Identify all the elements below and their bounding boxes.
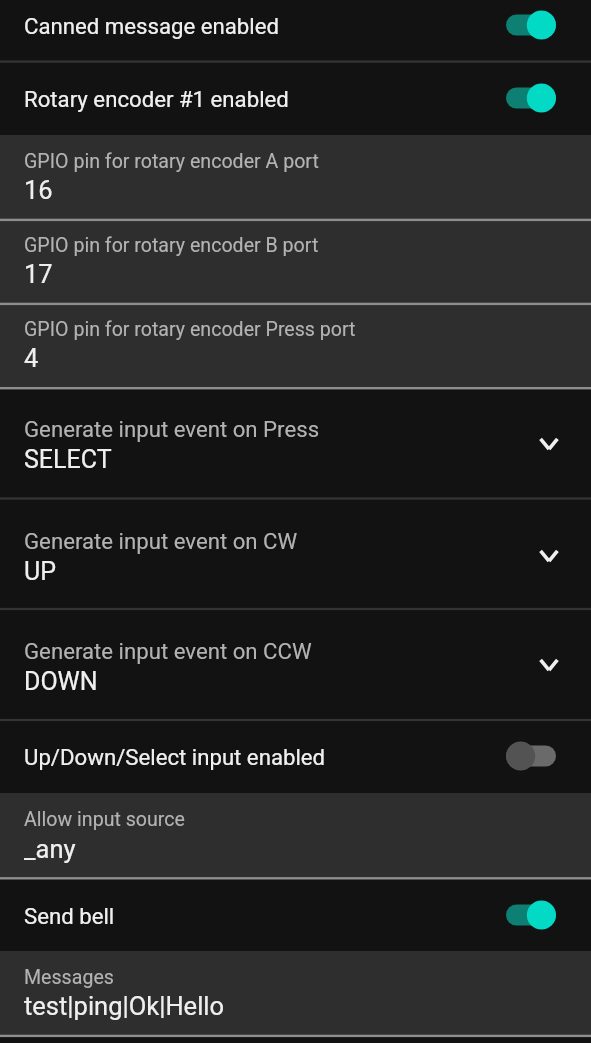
- staticText: 16: [24, 175, 53, 205]
- staticText: DOWN: [24, 667, 98, 696]
- button[interactable]: Up/Down/Select input enabled: [0, 720, 591, 793]
- staticText: GPIO pin for rotary encoder Press port: [24, 318, 356, 341]
- staticText: GPIO pin for rotary encoder B port: [24, 234, 319, 257]
- staticText: Generate input event on CCW: [24, 638, 312, 664]
- button[interactable]: Expand dropdown: [531, 538, 567, 574]
- button[interactable]: GPIO pin for rotary encoder A port: [0, 135, 591, 219]
- button[interactable]: Rotary encoder #1 enabled: [0, 62, 591, 135]
- button[interactable]: Expand dropdown: [531, 647, 567, 683]
- button[interactable]: On: [506, 899, 556, 931]
- button[interactable]: Generate input event on CW: [0, 499, 591, 610]
- button[interactable]: GPIO pin for rotary encoder B port: [0, 219, 591, 303]
- staticText: Allow input source: [24, 808, 185, 831]
- button[interactable]: Send bell: [0, 878, 591, 952]
- staticText: Generate input event on Press: [24, 416, 320, 442]
- staticText: _any: [24, 834, 76, 864]
- button[interactable]: On: [506, 9, 556, 41]
- staticText: Generate input event on CW: [24, 528, 298, 554]
- staticText: test|ping|Ok|Hello: [24, 991, 225, 1021]
- button[interactable]: Canned message enabled: [0, 0, 591, 62]
- staticText: Rotary encoder #1 enabled: [24, 86, 289, 112]
- staticText: SELECT: [24, 445, 112, 474]
- staticText: 17: [24, 259, 53, 289]
- button[interactable]: On: [506, 82, 556, 114]
- staticText: Messages: [24, 966, 114, 989]
- staticText: UP: [24, 557, 56, 586]
- button[interactable]: Off: [506, 740, 556, 772]
- staticText: Canned message enabled: [24, 13, 279, 39]
- button[interactable]: Expand dropdown: [531, 426, 567, 462]
- button[interactable]: Allow input source: [0, 793, 591, 878]
- staticText: Up/Down/Select input enabled: [24, 744, 326, 770]
- staticText: 4: [24, 343, 39, 373]
- button[interactable]: Generate input event on CCW: [0, 609, 591, 720]
- button[interactable]: GPIO pin for rotary encoder Press port: [0, 303, 591, 387]
- staticText: GPIO pin for rotary encoder A port: [24, 150, 319, 173]
- button[interactable]: Messages: [0, 951, 591, 1035]
- staticText: Send bell: [24, 903, 115, 929]
- button[interactable]: Generate input event on Press: [0, 387, 591, 499]
